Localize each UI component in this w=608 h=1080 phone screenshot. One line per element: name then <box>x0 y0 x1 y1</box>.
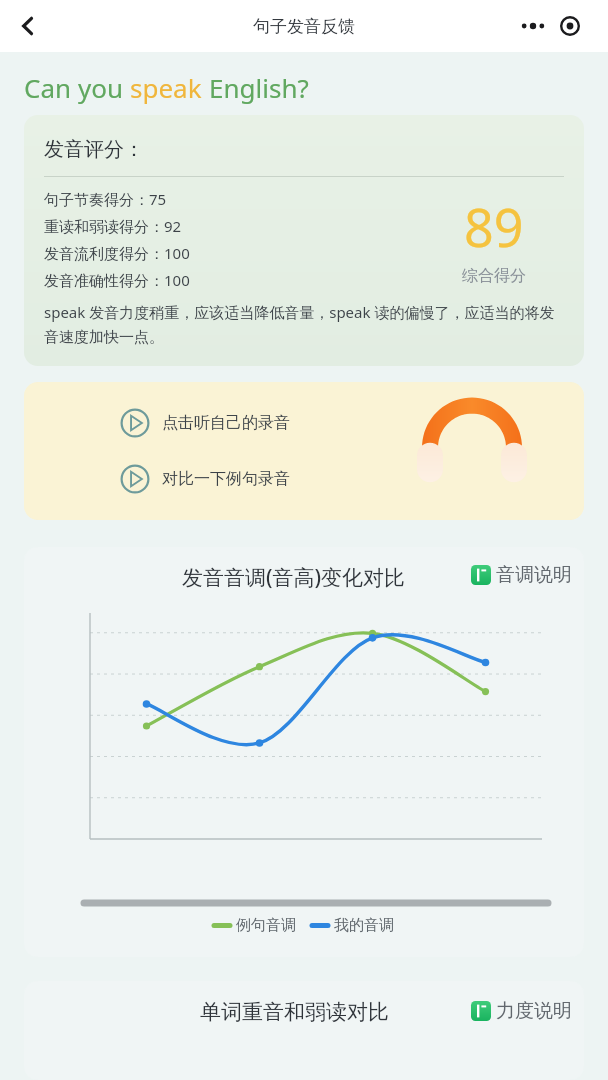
staticText: 发音流利度得分：100 <box>44 243 190 263</box>
staticText: speak 发音力度稍重，应该适当降低音量，speak 读的偏慢了，应适当的将发… <box>44 302 564 346</box>
staticText: English? <box>209 70 309 105</box>
staticText: you <box>78 70 130 105</box>
staticText: 单词重音和弱读对比 <box>200 999 389 1025</box>
staticText: 发音音调(音高)变化对比 <box>182 563 406 592</box>
staticText: Can <box>24 70 78 105</box>
staticText: 例句音调 <box>236 916 296 935</box>
staticText: 句子发音反馈 <box>253 16 355 37</box>
staticText: 发音准确性得分：100 <box>44 270 190 290</box>
staticText: 对比一下例句录音 <box>162 469 290 489</box>
button[interactable]: 对比一下例句录音 <box>118 462 292 496</box>
staticText: 综合得分 <box>462 266 526 286</box>
staticText: 我的音调 <box>334 916 394 935</box>
staticText: 重读和弱读得分：92 <box>44 216 182 236</box>
button[interactable]: 点击听自己的录音 <box>118 406 292 440</box>
button[interactable]: 音调说明 <box>471 563 572 587</box>
staticText: 音调说明 <box>496 563 572 587</box>
staticText: 力度说明 <box>496 999 572 1023</box>
button[interactable]: 力度说明 <box>471 999 572 1023</box>
button[interactable]: 单词重音和弱读对比 <box>24 981 584 1080</box>
button[interactable]: 发音评分： <box>24 115 584 366</box>
staticText: 句子节奏得分：75 <box>44 189 167 209</box>
button[interactable]: Menu <box>505 9 595 43</box>
staticText: 发音评分： <box>44 137 144 162</box>
button[interactable]: Back <box>8 6 48 46</box>
staticText: 89 <box>464 191 524 262</box>
staticText: speak <box>130 70 209 105</box>
staticText: 点击听自己的录音 <box>162 413 290 433</box>
